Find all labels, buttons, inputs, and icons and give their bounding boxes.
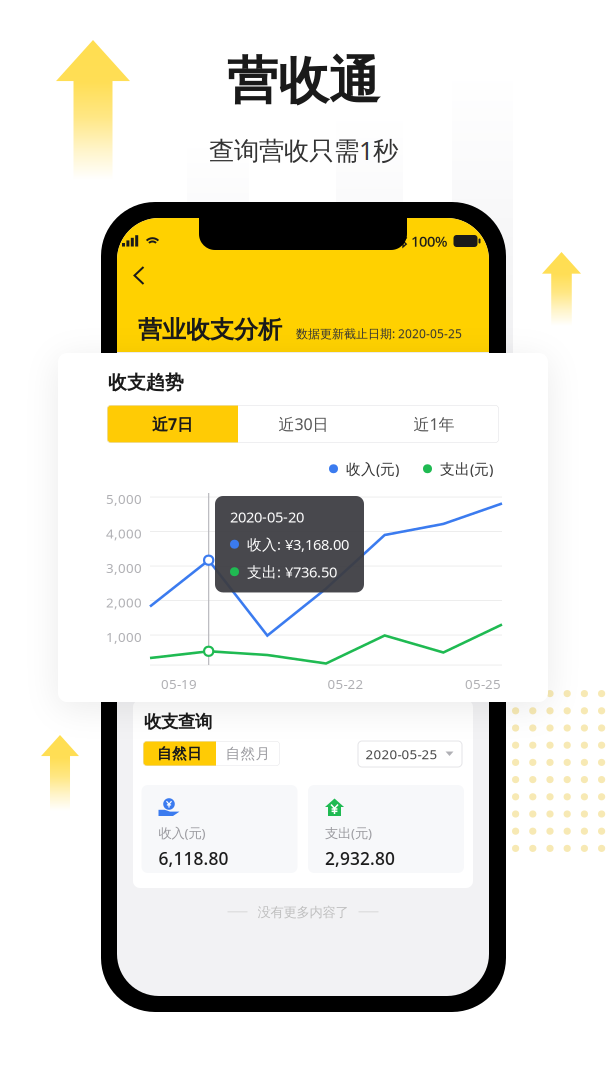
staticText: 1,000 (106, 628, 142, 646)
staticText: 收支趋势 (108, 371, 184, 394)
staticText: 近1年 (413, 413, 454, 435)
staticText: 近30日 (278, 413, 328, 435)
staticText: 6,118.80 (158, 847, 228, 870)
staticText: 2,932.80 (325, 847, 395, 870)
staticText: 05-25 (465, 675, 501, 693)
staticText: 营收通 (227, 50, 380, 112)
staticText: 营业收支分析 (138, 315, 282, 344)
staticText: 收入(元) (346, 459, 399, 478)
staticText: 05-19 (161, 675, 197, 693)
staticText: 自然月 (225, 744, 270, 762)
staticText: 4,000 (106, 524, 142, 542)
staticText: 数据更新截止日期: 2020-05-25 (296, 325, 462, 341)
staticText: 支出: ¥736.50 (247, 562, 337, 581)
button[interactable]: 自然日 (143, 741, 216, 766)
button[interactable]: 近1年 (369, 405, 499, 443)
staticText: 2020-05-20 (230, 507, 304, 526)
button[interactable]: 近7日 (107, 405, 238, 443)
staticText: 收入: ¥3,168.00 (247, 534, 349, 554)
staticText: 支出(元) (325, 824, 372, 842)
staticText: 2,000 (106, 593, 142, 611)
staticText: 2020-05-25 (365, 745, 437, 763)
button[interactable]: 2020-05-25 (358, 741, 462, 767)
staticText: 自然日 (157, 744, 202, 762)
staticText: 收入(元) (158, 824, 205, 842)
staticText: 查询营收只需1秒 (209, 133, 398, 167)
staticText: 3,000 (106, 559, 142, 577)
button[interactable]: Back (124, 257, 154, 294)
staticText: 近7日 (152, 413, 193, 435)
staticText: 支出(元) (440, 459, 493, 478)
staticText: 没有更多内容了 (257, 904, 348, 920)
staticText: 5,000 (106, 490, 142, 508)
button[interactable]: 近30日 (238, 405, 369, 443)
staticText: 收支查询 (144, 711, 212, 732)
staticText: 05-22 (327, 675, 363, 693)
staticText: 100% (411, 231, 447, 251)
button[interactable]: 自然月 (216, 741, 280, 766)
